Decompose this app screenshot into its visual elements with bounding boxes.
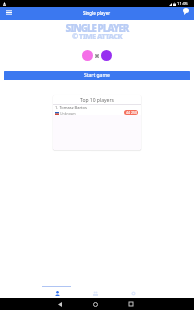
staticText: Start game <box>84 72 110 79</box>
button[interactable]: Back <box>50 298 70 310</box>
button[interactable]: 1. Tomasz Bartos <box>55 105 138 115</box>
staticText: © TIME ATTACK <box>0 31 194 41</box>
staticText: Top 10 players <box>80 97 114 104</box>
button[interactable]: Chat <box>178 7 194 20</box>
staticText: 44 250 <box>126 110 137 115</box>
button[interactable]: Multiplayer <box>76 286 114 298</box>
staticText: 1. Tomasz Bartos <box>55 105 87 110</box>
button[interactable]: Start game <box>4 71 190 80</box>
staticText: 11:05 <box>177 1 188 7</box>
button[interactable]: Settings <box>114 286 152 298</box>
staticText: Unknown <box>60 111 76 115</box>
button[interactable]: Home <box>85 298 105 310</box>
staticText: Single player <box>83 10 111 16</box>
button[interactable]: Single player <box>38 286 76 298</box>
button[interactable]: Recent apps <box>121 298 141 310</box>
staticText: SINGLE PLAYER <box>0 22 194 35</box>
button[interactable]: Open navigation menu <box>0 7 18 20</box>
